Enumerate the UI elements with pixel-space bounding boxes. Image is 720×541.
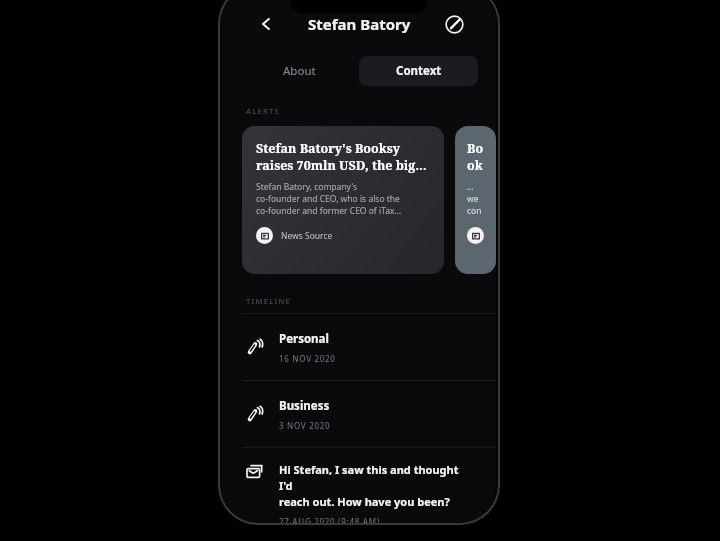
staticText: Stefan Batory [308,14,411,34]
staticText: 3 NOV 2020 [279,420,331,431]
button[interactable]: Hi Stefan, I saw this and thought I'd re… [222,448,496,523]
staticText: TIMELINE [246,296,291,306]
staticText: …we conv says [467,181,484,217]
button[interactable]: Back [250,8,282,40]
button[interactable]: Edit [438,8,470,40]
staticText: News Source [281,230,333,242]
staticText: 16 NOV 2020 [279,353,336,364]
button[interactable]: Business [222,381,496,447]
staticText: Business [279,398,330,414]
staticText: Hi Stefan, I saw this and thought I'd re… [279,462,474,509]
button[interactable]: Context [359,56,478,86]
staticText: Stefan Batory's Booksy raises 70mln USD,… [256,140,427,173]
button[interactable]: Booksy app… [455,126,496,274]
button[interactable]: Personal [222,314,496,380]
staticText: Stefan Batory, company's co-founder and … [256,181,402,217]
staticText: Booksy app… [467,140,484,173]
staticText: 27 AUG 2020 (9:48 AM) [279,516,380,523]
button[interactable]: Stefan Batory's Booksy raises 70mln USD,… [242,126,444,274]
button[interactable]: About [240,56,359,86]
staticText: Context [396,63,442,79]
staticText: About [283,63,316,79]
staticText: ALERTS [246,106,280,116]
staticText: Personal [279,331,329,347]
